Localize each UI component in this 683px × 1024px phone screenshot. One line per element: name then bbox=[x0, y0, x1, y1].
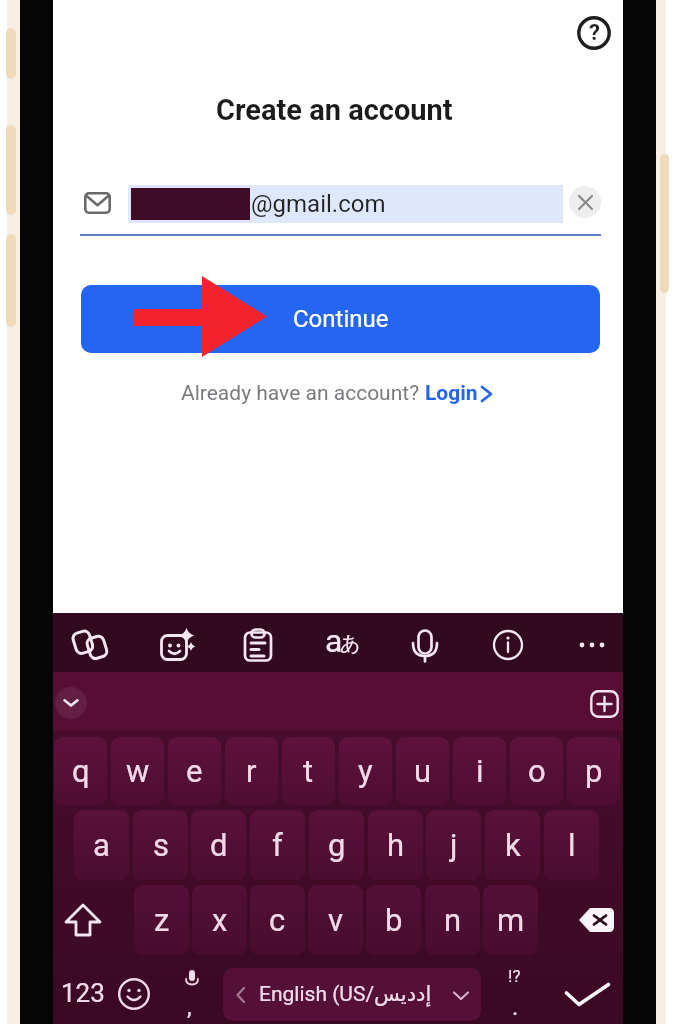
staticText: Continue bbox=[293, 305, 389, 333]
button[interactable]: Collapse toolbar bbox=[55, 687, 87, 719]
staticText: @gmail.com bbox=[251, 190, 386, 218]
staticText: y bbox=[358, 753, 373, 789]
button[interactable]: 123 bbox=[53, 969, 113, 1017]
button[interactable]: Clear text bbox=[569, 186, 601, 218]
button[interactable]: l bbox=[544, 810, 599, 880]
button[interactable]: s bbox=[133, 810, 188, 880]
button[interactable]: k bbox=[485, 810, 540, 880]
staticText: h bbox=[387, 827, 405, 863]
button[interactable]: a bbox=[74, 810, 129, 880]
staticText: l bbox=[568, 827, 576, 863]
staticText: a bbox=[93, 827, 110, 863]
staticText: j bbox=[450, 827, 458, 863]
button[interactable]: r bbox=[225, 737, 278, 805]
button[interactable]: Stickers bbox=[152, 621, 200, 669]
staticText: あ bbox=[340, 631, 361, 656]
button[interactable]: Voice input bbox=[401, 621, 449, 669]
button[interactable]: Login bbox=[425, 381, 496, 406]
button[interactable]: Info bbox=[484, 621, 532, 669]
button[interactable]: English (US/إدديس bbox=[223, 968, 481, 1021]
button[interactable]: Backspace bbox=[570, 885, 623, 955]
button[interactable]: Continue bbox=[81, 285, 600, 353]
staticText: Login bbox=[425, 381, 478, 406]
button[interactable]: More options bbox=[568, 621, 616, 669]
staticText: b bbox=[385, 902, 403, 938]
staticText: q bbox=[72, 753, 90, 789]
button[interactable]: j bbox=[426, 810, 481, 880]
staticText: c bbox=[269, 902, 286, 938]
button[interactable]: h bbox=[368, 810, 423, 880]
staticText: v bbox=[328, 902, 344, 938]
staticText: r bbox=[246, 753, 257, 789]
staticText: d bbox=[210, 827, 228, 863]
button[interactable]: m bbox=[483, 885, 538, 955]
button[interactable]: z bbox=[134, 885, 189, 955]
button[interactable]: u bbox=[396, 737, 449, 805]
button[interactable]: Help bbox=[573, 12, 615, 54]
staticText: p bbox=[585, 753, 603, 789]
button[interactable]: b bbox=[366, 885, 421, 955]
button[interactable]: i bbox=[453, 737, 506, 805]
button[interactable]: Language bbox=[318, 621, 366, 669]
staticText: z bbox=[154, 902, 170, 938]
staticText: ? bbox=[589, 20, 600, 46]
button[interactable]: f bbox=[250, 810, 305, 880]
staticText: t bbox=[303, 753, 314, 789]
button[interactable]: @gmail.com bbox=[128, 185, 563, 223]
staticText: n bbox=[444, 902, 462, 938]
staticText: 123 bbox=[61, 978, 105, 1008]
staticText: u bbox=[414, 753, 432, 789]
button[interactable]: n bbox=[425, 885, 480, 955]
staticText: English (US/إدديس bbox=[259, 982, 432, 1007]
button[interactable]: Emoji bbox=[110, 970, 158, 1018]
button[interactable]: Keyboard themes bbox=[67, 621, 115, 669]
staticText: , bbox=[187, 993, 192, 1021]
staticText: m bbox=[497, 902, 525, 938]
button[interactable]: Add bbox=[590, 690, 619, 718]
button[interactable]: Enter bbox=[555, 966, 619, 1022]
button[interactable]: v bbox=[308, 885, 363, 955]
staticText: Already have an account? bbox=[181, 381, 425, 406]
staticText: i bbox=[476, 753, 484, 789]
staticText: a bbox=[325, 622, 343, 660]
button[interactable]: Shift bbox=[55, 885, 110, 955]
button[interactable]: p bbox=[567, 737, 620, 805]
staticText: k bbox=[505, 827, 521, 863]
staticText: . bbox=[512, 993, 519, 1021]
button[interactable]: x bbox=[192, 885, 247, 955]
button[interactable]: c bbox=[250, 885, 305, 955]
button[interactable]: Comma bbox=[168, 965, 216, 1017]
button[interactable]: y bbox=[339, 737, 392, 805]
button[interactable]: g bbox=[309, 810, 364, 880]
button[interactable]: t bbox=[282, 737, 335, 805]
button[interactable]: Clipboard bbox=[234, 621, 282, 669]
staticText: s bbox=[153, 827, 169, 863]
button[interactable]: d bbox=[191, 810, 246, 880]
button[interactable]: o bbox=[510, 737, 563, 805]
staticText: Create an account bbox=[216, 93, 453, 127]
button[interactable]: w bbox=[111, 737, 164, 805]
staticText: o bbox=[528, 753, 546, 789]
staticText: w bbox=[126, 753, 150, 789]
staticText: x bbox=[212, 902, 228, 938]
button[interactable]: e bbox=[168, 737, 221, 805]
button[interactable]: q bbox=[54, 737, 107, 805]
staticText: f bbox=[272, 827, 283, 863]
staticText: g bbox=[328, 827, 346, 863]
staticText: !? bbox=[508, 966, 521, 986]
staticText: e bbox=[186, 753, 203, 789]
button[interactable]: Period bbox=[491, 965, 539, 1017]
